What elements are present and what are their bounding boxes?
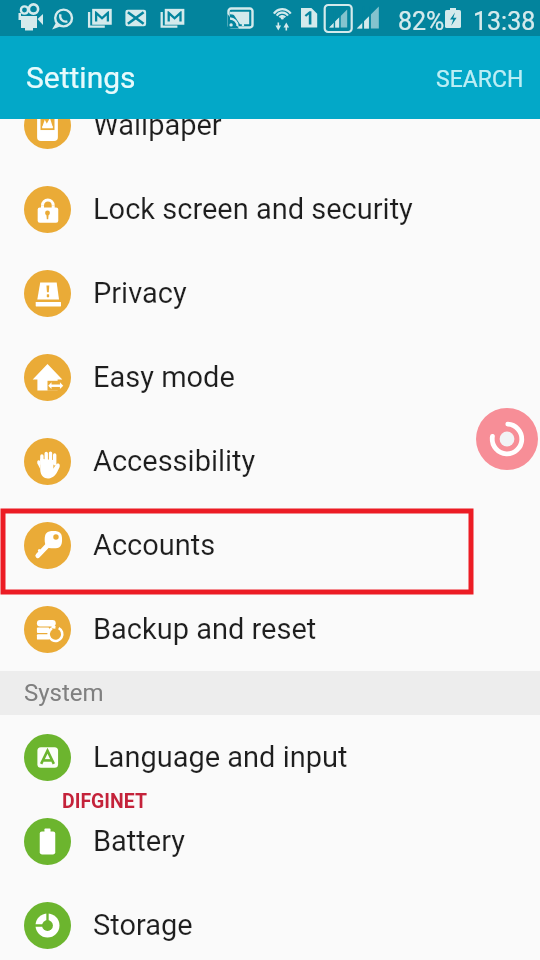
button[interactable]: Accessibility — [0, 419, 540, 503]
button[interactable]: Wallpaper — [0, 83, 540, 167]
staticText: Lock screen and security — [93, 192, 413, 226]
button[interactable]: Lock screen and security — [0, 167, 540, 251]
staticText: Battery — [93, 824, 185, 858]
staticText: System — [24, 679, 104, 707]
staticText: Storage — [93, 908, 193, 942]
staticText: Language and input — [93, 740, 348, 774]
staticText: 82% — [398, 7, 445, 36]
button[interactable]: Language and input — [0, 715, 540, 799]
button[interactable]: SEARCH — [414, 48, 540, 107]
button[interactable]: Battery — [0, 799, 540, 883]
button[interactable]: Easy mode — [0, 335, 540, 419]
staticText: Privacy — [93, 276, 187, 310]
staticText: DIFGINET — [62, 790, 148, 813]
staticText: Wallpaper — [93, 108, 222, 142]
button[interactable]: Screen recorder — [476, 408, 538, 470]
staticText: Accessibility — [93, 444, 256, 478]
button[interactable]: Privacy — [0, 251, 540, 335]
staticText: Backup and reset — [93, 612, 317, 646]
staticText: SEARCH — [436, 66, 524, 93]
button[interactable]: Storage — [0, 883, 540, 960]
staticText: 13:38 — [473, 7, 536, 36]
staticText: Accounts — [93, 528, 216, 562]
button[interactable]: Accounts — [0, 503, 540, 587]
button[interactable]: Backup and reset — [0, 587, 540, 671]
staticText: Easy mode — [93, 360, 235, 394]
staticText: Settings — [26, 60, 136, 95]
